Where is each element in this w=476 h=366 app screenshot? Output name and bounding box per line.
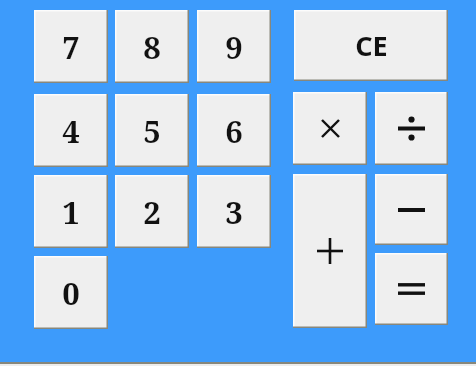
button[interactable]: Multiply (293, 92, 367, 165)
button[interactable]: 0 (34, 256, 108, 329)
button[interactable]: 8 (115, 10, 189, 83)
staticText: 5 (143, 110, 161, 152)
button[interactable]: 1 (34, 175, 108, 248)
staticText: 8 (143, 26, 161, 68)
button[interactable]: Plus (293, 174, 367, 328)
button[interactable]: 9 (197, 10, 271, 83)
button[interactable]: 5 (115, 94, 189, 167)
staticText: 0 (62, 272, 80, 314)
button[interactable]: 2 (115, 175, 189, 248)
button[interactable]: 3 (197, 175, 271, 248)
staticText: 1 (62, 191, 80, 233)
button[interactable]: CE (294, 10, 448, 81)
staticText: 6 (225, 110, 243, 152)
button[interactable]: 6 (197, 94, 271, 167)
button[interactable]: Minus (375, 174, 448, 245)
button[interactable]: 4 (34, 94, 108, 167)
staticText: 4 (62, 110, 80, 152)
staticText: 7 (62, 26, 80, 68)
button[interactable]: Divide (375, 92, 448, 165)
staticText: 9 (225, 26, 243, 68)
button[interactable]: Equals (375, 253, 448, 325)
staticText: CE (355, 27, 388, 64)
staticText: 3 (225, 191, 243, 233)
button[interactable]: 7 (34, 10, 108, 83)
staticText: 2 (143, 191, 161, 233)
